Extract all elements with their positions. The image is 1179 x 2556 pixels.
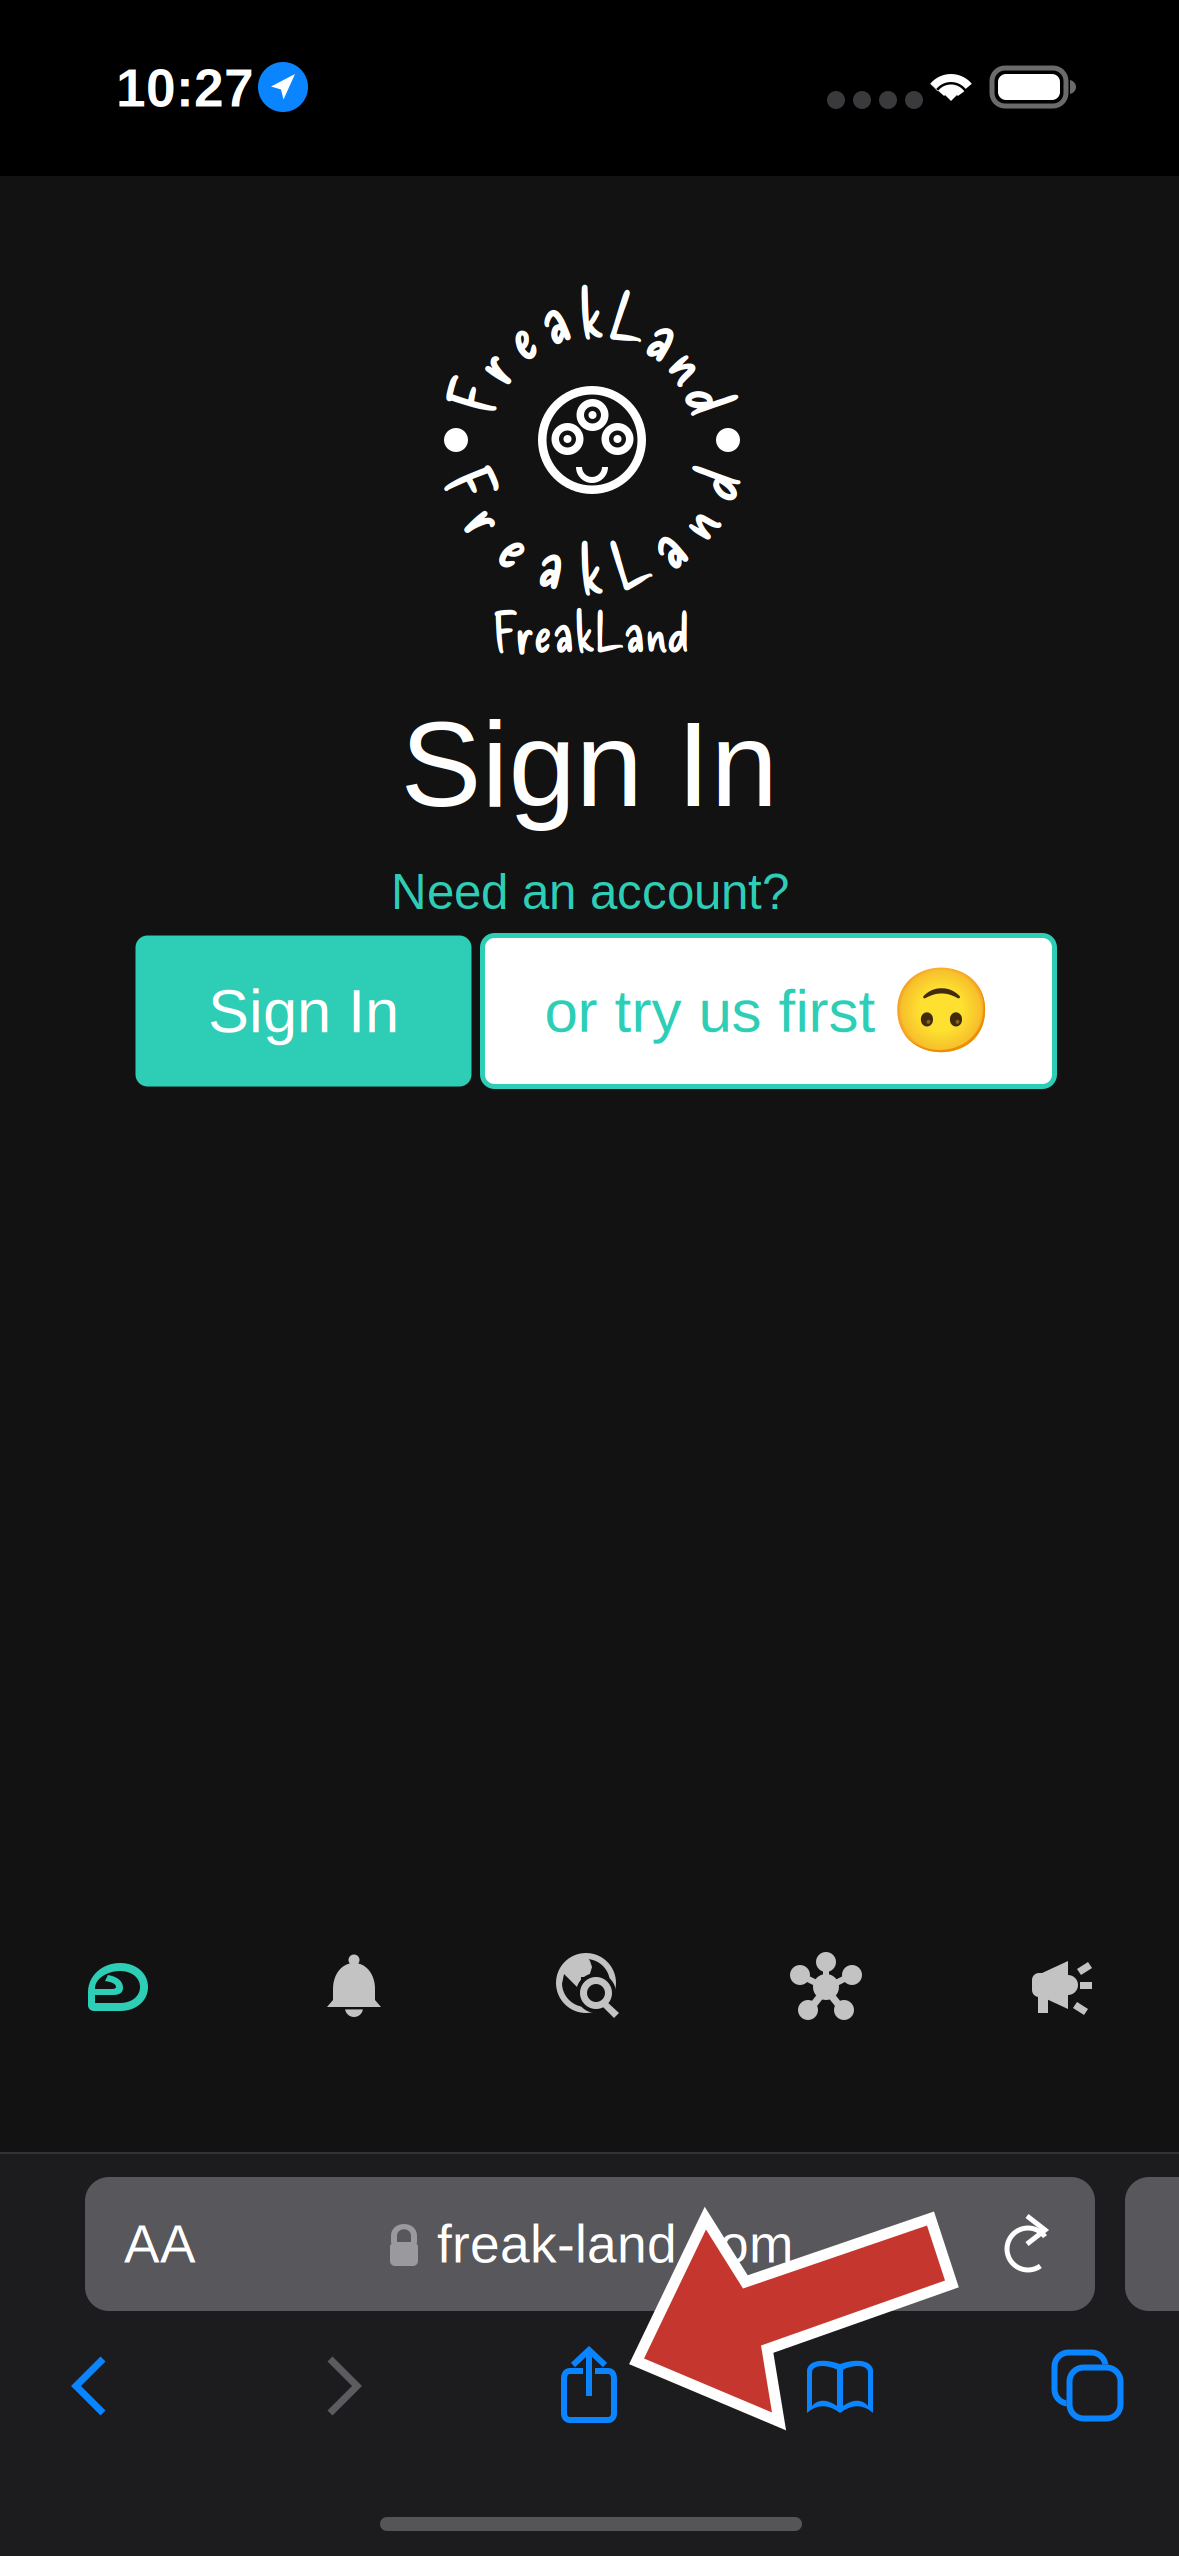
- staticText: r: [478, 323, 501, 403]
- staticText: k: [579, 272, 605, 352]
- staticText: freak-land.com: [437, 2214, 793, 2274]
- button[interactable]: Explore: [472, 1937, 708, 2037]
- button[interactable]: Bookmarks: [760, 2336, 920, 2436]
- button[interactable]: or try us first: [482, 935, 1054, 1086]
- staticText: Sign In: [400, 696, 777, 832]
- staticText: a: [540, 278, 566, 358]
- staticText: d: [699, 443, 727, 523]
- staticText: a: [653, 505, 679, 585]
- staticText: L: [614, 278, 648, 358]
- staticText: F: [457, 357, 485, 437]
- staticText: n: [680, 323, 708, 403]
- button[interactable]: Notifications: [236, 1937, 472, 2037]
- staticText: n: [680, 477, 708, 557]
- button[interactable]: Forward: [264, 2336, 424, 2436]
- button[interactable]: Network: [708, 1937, 944, 2037]
- staticText: L: [614, 522, 648, 602]
- staticText: AA: [124, 2214, 196, 2274]
- staticText: r: [478, 477, 501, 557]
- staticText: e: [507, 295, 530, 375]
- staticText: k: [579, 528, 605, 608]
- button[interactable]: Page settings: [95, 2177, 225, 2311]
- staticText: or try us first: [544, 977, 875, 1044]
- staticText: d: [699, 357, 727, 437]
- staticText: e: [507, 505, 530, 585]
- button[interactable]: Need an account?: [381, 858, 799, 925]
- button[interactable]: Share: [509, 2336, 669, 2436]
- staticText: Need an account?: [391, 864, 789, 919]
- staticText: 🙃: [889, 964, 992, 1058]
- button[interactable]: Sign In: [135, 935, 471, 1086]
- button[interactable]: Back: [10, 2336, 170, 2436]
- staticText: a: [540, 522, 566, 602]
- button[interactable]: Announcements: [944, 1937, 1179, 2037]
- staticText: a: [653, 295, 679, 375]
- button[interactable]: Reload: [970, 2177, 1090, 2311]
- staticText: 10:27: [116, 58, 254, 118]
- staticText: F: [457, 443, 485, 523]
- staticText: Sign In: [208, 977, 399, 1045]
- button[interactable]: Home: [0, 1937, 236, 2037]
- staticText: FreakLand: [492, 598, 689, 664]
- button[interactable]: Tabs: [1008, 2336, 1168, 2436]
